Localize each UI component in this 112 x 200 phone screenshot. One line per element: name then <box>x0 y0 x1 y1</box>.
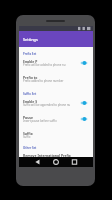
button[interactable]: Other Set <box>19 143 93 149</box>
staticText: Other Set <box>23 146 37 149</box>
button[interactable]: Enable P <box>19 55 93 71</box>
staticText: Remove International Prefix <box>23 153 71 158</box>
staticText: Suffix Set <box>23 92 37 95</box>
staticText: Suffix will be appended to phone nu <box>23 103 81 107</box>
staticText: Prefix will be added to phone nu <box>23 63 81 67</box>
staticText: Pause <box>23 115 34 120</box>
button[interactable]: Toggle Enable P <box>78 55 90 71</box>
button[interactable]: Remove International Prefix <box>19 149 93 165</box>
staticText: Settings <box>23 37 38 42</box>
button[interactable]: Pause <box>19 111 93 127</box>
button[interactable]: Toggle Enable S <box>78 95 90 111</box>
staticText: Insert pause before suffix <box>23 119 81 123</box>
button[interactable]: Prefix Set <box>19 47 93 55</box>
staticText: Prefix Set <box>23 52 37 55</box>
button[interactable]: Prefix to <box>19 71 93 87</box>
button[interactable]: Enable S <box>19 95 93 111</box>
staticText: Suffix <box>23 135 81 139</box>
staticText: Enable P <box>23 59 38 64</box>
staticText: Prefix added to phone number <box>23 79 81 83</box>
staticText: Prefix to <box>23 75 38 80</box>
button[interactable]: Suffix Set <box>19 87 93 95</box>
staticText: Enable S <box>23 99 38 104</box>
staticText: Suffix <box>23 131 33 136</box>
button[interactable]: Suffix <box>19 127 93 143</box>
button[interactable]: Toggle Pause <box>78 111 90 127</box>
